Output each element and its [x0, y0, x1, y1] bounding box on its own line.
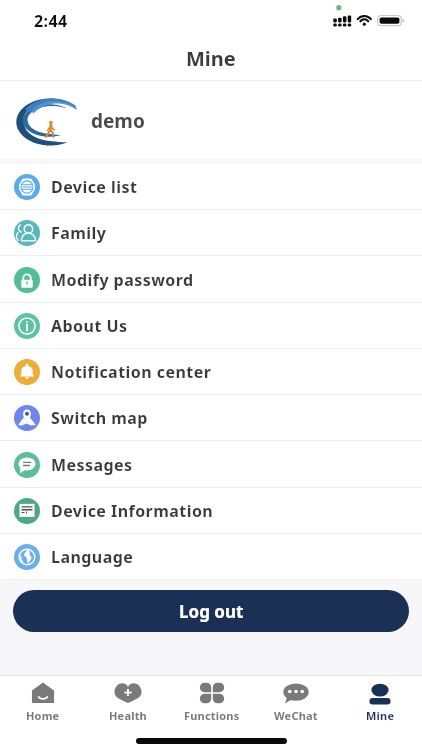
- staticText: Functions: [184, 708, 240, 723]
- staticText: 2:44: [34, 10, 68, 32]
- staticText: Modify password: [51, 269, 194, 291]
- button[interactable]: Home: [0, 676, 85, 726]
- button[interactable]: Mine: [338, 676, 422, 726]
- staticText: Home: [26, 708, 60, 723]
- button[interactable]: Log out: [13, 590, 409, 632]
- staticText: Notification center: [51, 361, 212, 383]
- staticText: Switch map: [51, 407, 148, 429]
- staticText: Log out: [179, 600, 244, 623]
- staticText: Family: [51, 222, 107, 244]
- button[interactable]: About Us: [0, 303, 422, 349]
- button[interactable]: Family: [0, 210, 422, 256]
- button[interactable]: Health: [85, 676, 170, 726]
- button[interactable]: Language: [0, 534, 422, 580]
- button[interactable]: Notification center: [0, 349, 422, 395]
- button[interactable]: demo: [0, 81, 422, 159]
- button[interactable]: Device list: [0, 164, 422, 210]
- button[interactable]: Switch map: [0, 395, 422, 441]
- staticText: Health: [109, 708, 147, 723]
- staticText: Device Information: [51, 500, 214, 522]
- staticText: Mine: [366, 708, 395, 723]
- button[interactable]: Device Information: [0, 488, 422, 534]
- button[interactable]: Functions: [170, 676, 254, 726]
- staticText: WeChat: [274, 708, 318, 723]
- button[interactable]: Messages: [0, 441, 422, 488]
- staticText: About Us: [51, 315, 128, 337]
- button[interactable]: Modify password: [0, 256, 422, 303]
- staticText: Language: [51, 546, 134, 568]
- button[interactable]: WeChat: [254, 676, 338, 726]
- staticText: Device list: [51, 176, 138, 198]
- staticText: Messages: [51, 454, 133, 476]
- staticText: Mine: [186, 45, 236, 72]
- staticText: demo: [91, 108, 145, 134]
